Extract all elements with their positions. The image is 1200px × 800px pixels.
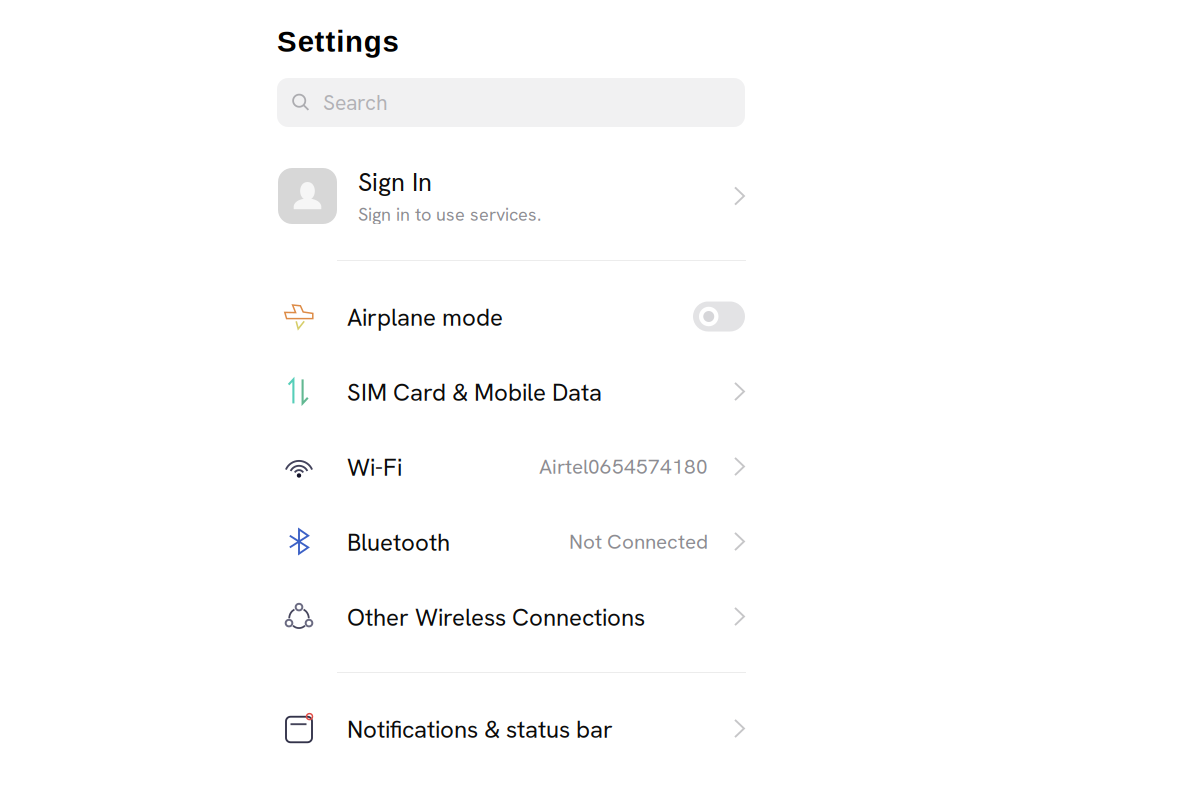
staticText: Notifications & status bar <box>347 714 613 745</box>
staticText: Wi-Fi <box>347 452 402 483</box>
button[interactable]: Sign In <box>277 168 745 224</box>
button[interactable]: Search <box>277 78 745 127</box>
staticText: Search <box>323 89 388 116</box>
staticText: Not Connected <box>569 528 708 555</box>
staticText: Sign In <box>358 166 432 199</box>
button[interactable]: Other Wireless Connections <box>277 579 745 654</box>
button[interactable]: Bluetooth <box>277 504 745 579</box>
button[interactable]: SIM Card & Mobile Data <box>277 354 745 429</box>
staticText: Sign in to use services. <box>358 203 541 226</box>
button[interactable]: Airplane mode <box>277 279 745 354</box>
staticText: Airplane mode <box>347 302 503 333</box>
button[interactable]: Notifications & status bar <box>277 691 745 766</box>
staticText: SIM Card & Mobile Data <box>347 377 602 408</box>
staticText: Bluetooth <box>347 527 450 558</box>
button[interactable]: Wi-Fi <box>277 429 745 504</box>
staticText: Airtel0654574180 <box>539 453 708 480</box>
staticText: Other Wireless Connections <box>347 602 645 633</box>
staticText: Settings <box>277 25 399 58</box>
